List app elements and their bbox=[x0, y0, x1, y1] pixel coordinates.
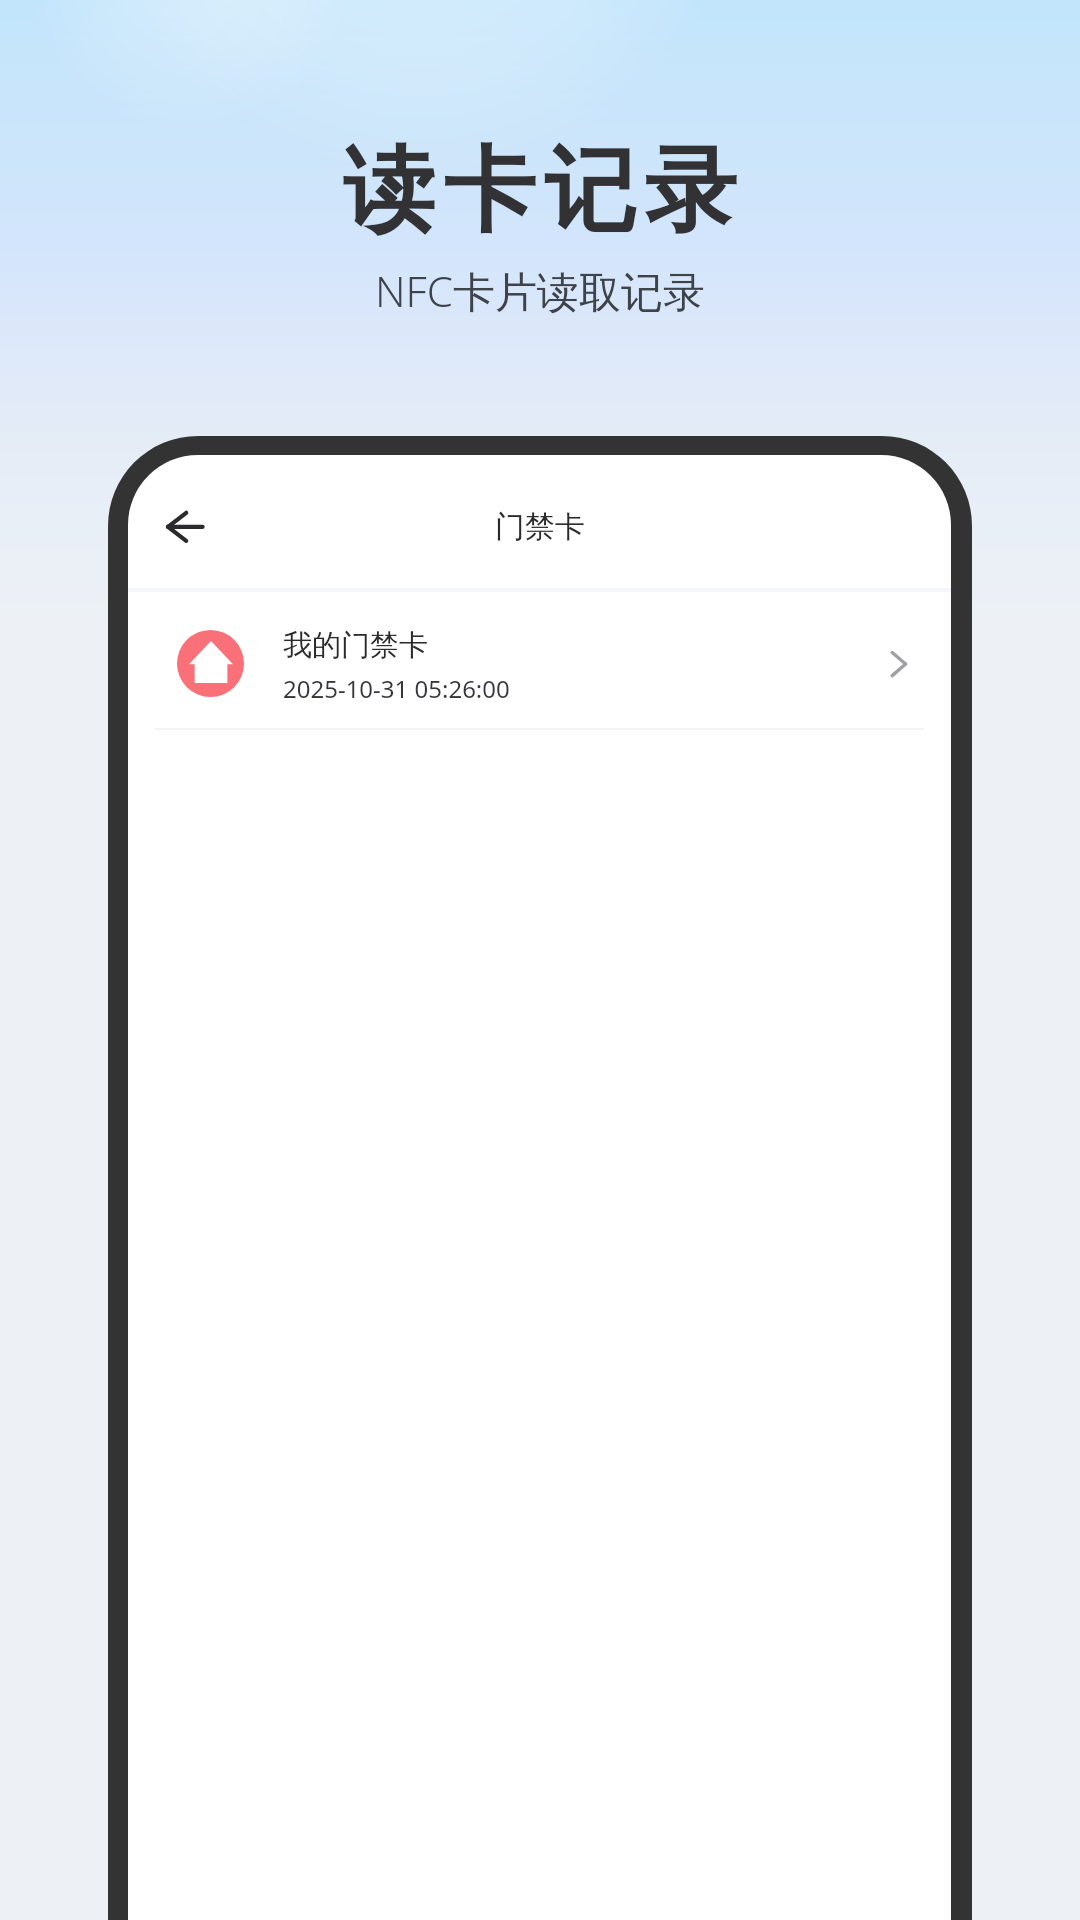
staticText: 门禁卡 bbox=[495, 508, 585, 546]
staticText: 2025-10-31 05:26:00 bbox=[283, 672, 510, 705]
staticText: 我的门禁卡 bbox=[283, 627, 428, 664]
button[interactable]: 我的门禁卡 bbox=[128, 592, 951, 728]
button[interactable]: Back bbox=[138, 480, 222, 564]
staticText: 读卡记录 bbox=[339, 133, 741, 249]
staticText: NFC卡片读取记录 bbox=[375, 262, 705, 319]
